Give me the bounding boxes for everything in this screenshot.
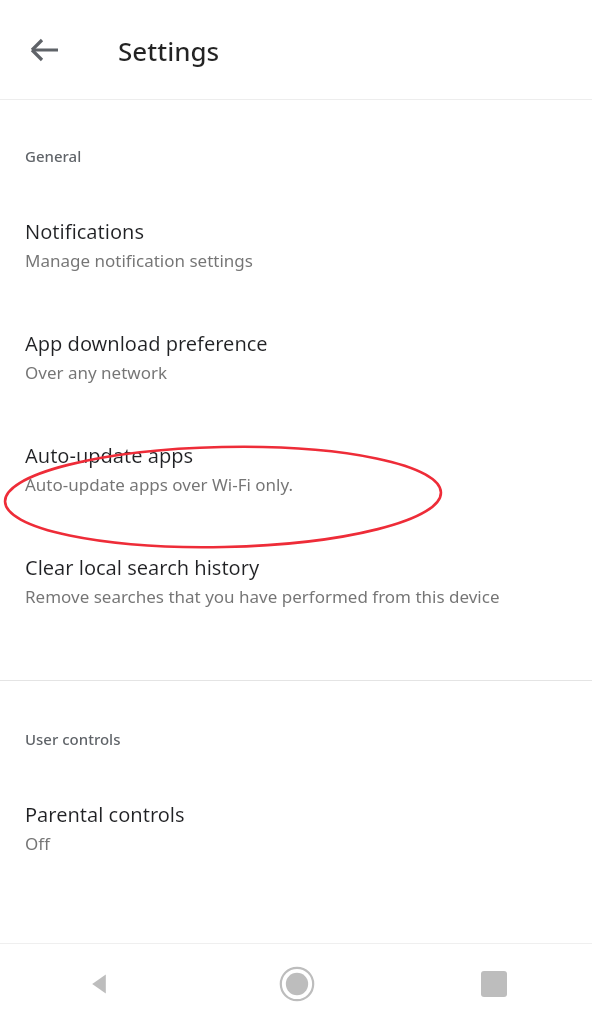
button[interactable]: Recent apps (395, 944, 592, 1024)
staticText: Notifications (25, 218, 144, 245)
staticText: Auto-update apps (25, 442, 194, 469)
button[interactable]: Notifications (0, 166, 592, 272)
staticText: Clear local search history (25, 554, 260, 581)
staticText: Manage notification settings (25, 249, 253, 272)
staticText: User controls (25, 729, 121, 749)
staticText: Settings (118, 33, 220, 68)
staticText: General (25, 146, 82, 166)
button[interactable]: App download preference (0, 272, 592, 384)
button[interactable]: Auto-update apps (0, 384, 592, 496)
staticText: Parental controls (25, 801, 185, 828)
button[interactable]: Parental controls (0, 749, 592, 855)
staticText: Over any network (25, 361, 168, 384)
staticText: Auto-update apps over Wi-Fi only. (25, 473, 294, 496)
staticText: Remove searches that you have performed … (25, 585, 500, 608)
button[interactable]: Home (198, 944, 395, 1024)
button[interactable]: Back (22, 27, 68, 73)
staticText: Off (25, 832, 50, 855)
staticText: App download preference (25, 330, 268, 357)
button[interactable]: Clear local search history (0, 496, 592, 608)
button[interactable]: Back (0, 944, 198, 1024)
